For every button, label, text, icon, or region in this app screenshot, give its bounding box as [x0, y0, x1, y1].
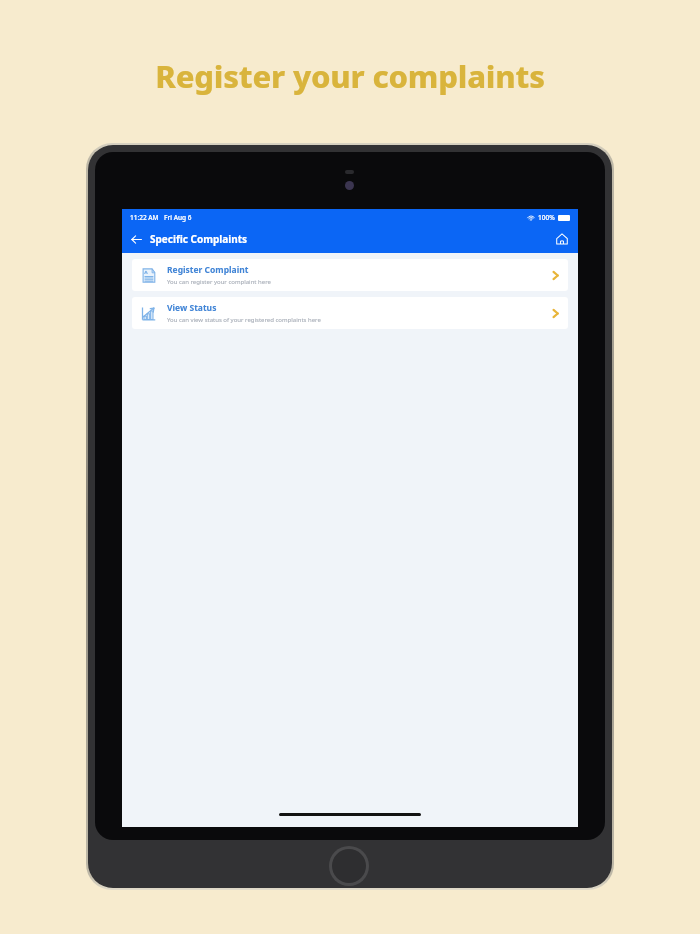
staticText: You can view status of your registered c…: [167, 316, 321, 324]
staticText: Specific Complaints: [150, 232, 248, 246]
button[interactable]: Home: [552, 229, 572, 249]
staticText: 100%: [538, 213, 555, 222]
staticText: Fri Aug 6: [164, 213, 192, 222]
button[interactable]: Back: [126, 229, 146, 249]
staticText: View Status: [167, 302, 217, 314]
staticText: Register your complaints: [155, 55, 545, 97]
button[interactable]: View Status: [132, 297, 568, 329]
staticText: Register Complaint: [167, 264, 249, 276]
staticText: You can register your complaint here: [167, 278, 271, 286]
button[interactable]: Register Complaint: [132, 259, 568, 291]
button[interactable]: Home button: [329, 846, 369, 886]
staticText: 11:22 AM: [130, 213, 159, 222]
